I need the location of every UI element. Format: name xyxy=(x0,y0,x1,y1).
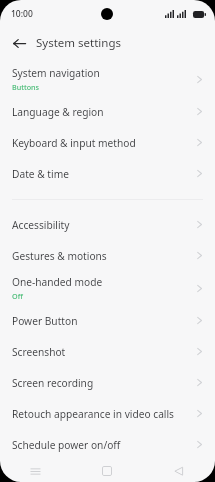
staticText: Screenshot xyxy=(12,345,66,359)
button[interactable]: Accessibility xyxy=(0,209,215,240)
staticText: System navigation xyxy=(12,66,100,80)
button[interactable]: Language & region xyxy=(0,96,215,127)
staticText: Power Button xyxy=(12,314,78,328)
staticText: Buttons xyxy=(12,82,40,92)
staticText: Accessibility xyxy=(12,218,70,232)
button[interactable]: Screenshot xyxy=(0,336,215,367)
button[interactable]: Retouch appearance in video calls xyxy=(0,398,215,429)
staticText: One-handed mode xyxy=(12,275,103,289)
button[interactable]: Keyboard & input method xyxy=(0,127,215,158)
staticText: Keyboard & input method xyxy=(12,136,136,150)
button[interactable]: Power Button xyxy=(0,305,215,336)
staticText: Off xyxy=(12,291,23,301)
button[interactable]: Back xyxy=(143,460,215,482)
button[interactable]: Screen recording xyxy=(0,367,215,398)
button[interactable]: One-handed mode xyxy=(0,271,215,305)
button[interactable]: System navigation xyxy=(0,62,215,96)
button[interactable]: Home xyxy=(71,460,143,482)
button[interactable]: Date & time xyxy=(0,158,215,189)
staticText: Retouch appearance in video calls xyxy=(12,407,174,421)
button[interactable]: Back xyxy=(6,30,32,56)
staticText: Date & time xyxy=(12,167,69,181)
button[interactable]: Gestures & motions xyxy=(0,240,215,271)
button[interactable]: Recents xyxy=(0,460,71,482)
staticText: Gestures & motions xyxy=(12,249,107,263)
staticText: System settings xyxy=(36,35,122,51)
staticText: 10:00 xyxy=(11,8,33,20)
staticText: Language & region xyxy=(12,105,104,119)
button[interactable]: Schedule power on/off xyxy=(0,429,215,460)
staticText: Schedule power on/off xyxy=(12,438,121,452)
staticText: Screen recording xyxy=(12,376,94,390)
